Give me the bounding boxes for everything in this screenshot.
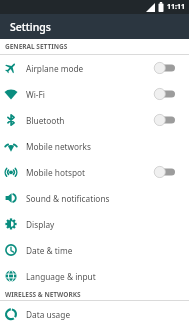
button[interactable]: Language & input [0,263,189,289]
staticText: Data usage [26,309,71,320]
button[interactable]: Airplane mode [0,55,189,81]
staticText: Date & time [26,245,73,256]
button[interactable]: Display [0,211,189,237]
staticText: Mobile hotspot [26,167,85,178]
staticText: Bluetooth [26,115,65,126]
button[interactable]: Sound & notifications [0,185,189,211]
staticText: Wi-Fi [26,89,45,100]
button[interactable] [154,114,175,126]
staticText: Display [26,219,55,230]
button[interactable]: Date & time [0,237,189,263]
button[interactable]: Mobile networks [0,133,189,159]
button[interactable] [154,166,175,178]
button[interactable]: Settings [0,14,189,39]
button[interactable] [154,62,175,74]
staticText: WIRELESS & NETWORKS [5,290,81,299]
button[interactable]: Data usage [0,301,189,327]
staticText: Sound & notifications [26,193,110,204]
staticText: Settings [10,20,51,34]
staticText: Airplane mode [26,63,84,74]
button[interactable]: Mobile hotspot [0,159,189,185]
staticText: 11:11 [167,2,185,12]
button[interactable]: Wi-Fi [0,81,189,107]
staticText: Mobile networks [26,141,91,152]
staticText: GENERAL SETTINGS [5,42,68,51]
staticText: Language & input [26,271,96,282]
button[interactable] [154,88,175,100]
button[interactable]: Bluetooth [0,107,189,133]
